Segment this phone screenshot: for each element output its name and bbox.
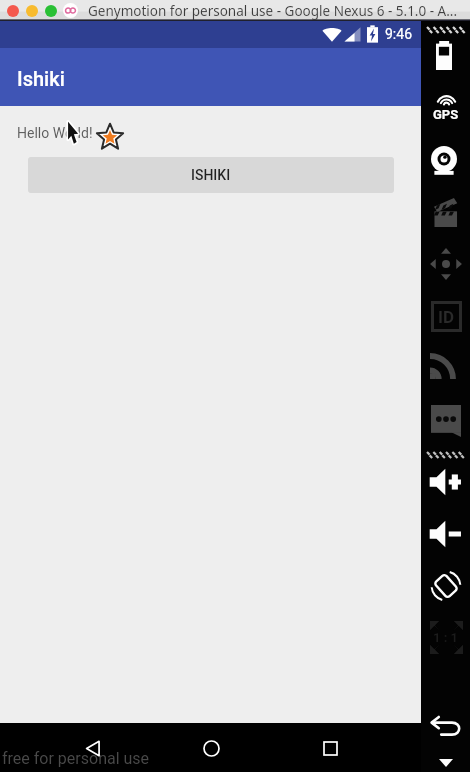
staticText: 9:46 xyxy=(385,26,412,42)
button[interactable]: Navigation pad xyxy=(427,248,465,280)
button[interactable]: Back xyxy=(427,709,465,745)
button[interactable]: Actual size xyxy=(427,618,465,656)
button[interactable]: Close window xyxy=(7,5,19,17)
button[interactable]: GPS xyxy=(427,94,465,126)
button[interactable]: Network xyxy=(424,348,462,382)
button[interactable]: Zoom window xyxy=(45,5,57,17)
staticText: ID xyxy=(438,307,455,327)
button[interactable]: Rotate xyxy=(427,568,465,604)
button[interactable]: Back xyxy=(69,724,117,772)
button[interactable]: Camera xyxy=(425,144,463,178)
button[interactable]: Messages xyxy=(427,403,465,439)
staticText: GPS xyxy=(433,107,459,122)
staticText: Genymotion for personal use - Google Nex… xyxy=(88,2,458,20)
staticText: ISHIKI xyxy=(191,167,231,183)
staticText: 1 : 1 xyxy=(433,630,459,645)
button[interactable]: Recent apps xyxy=(306,724,354,772)
staticText: Ishiki xyxy=(17,67,65,90)
button[interactable]: Volume up xyxy=(427,466,465,498)
staticText: Hello World! xyxy=(17,125,93,141)
button[interactable]: Volume down xyxy=(427,518,465,550)
button[interactable]: ISHIKI xyxy=(28,157,394,193)
button[interactable]: Minimize window xyxy=(26,5,38,17)
button[interactable]: Device ID xyxy=(427,299,465,333)
button[interactable]: Home xyxy=(187,724,235,772)
button[interactable]: Battery xyxy=(427,39,461,71)
button[interactable]: Record screencast xyxy=(427,196,465,228)
staticText: free for personal use xyxy=(2,749,150,768)
